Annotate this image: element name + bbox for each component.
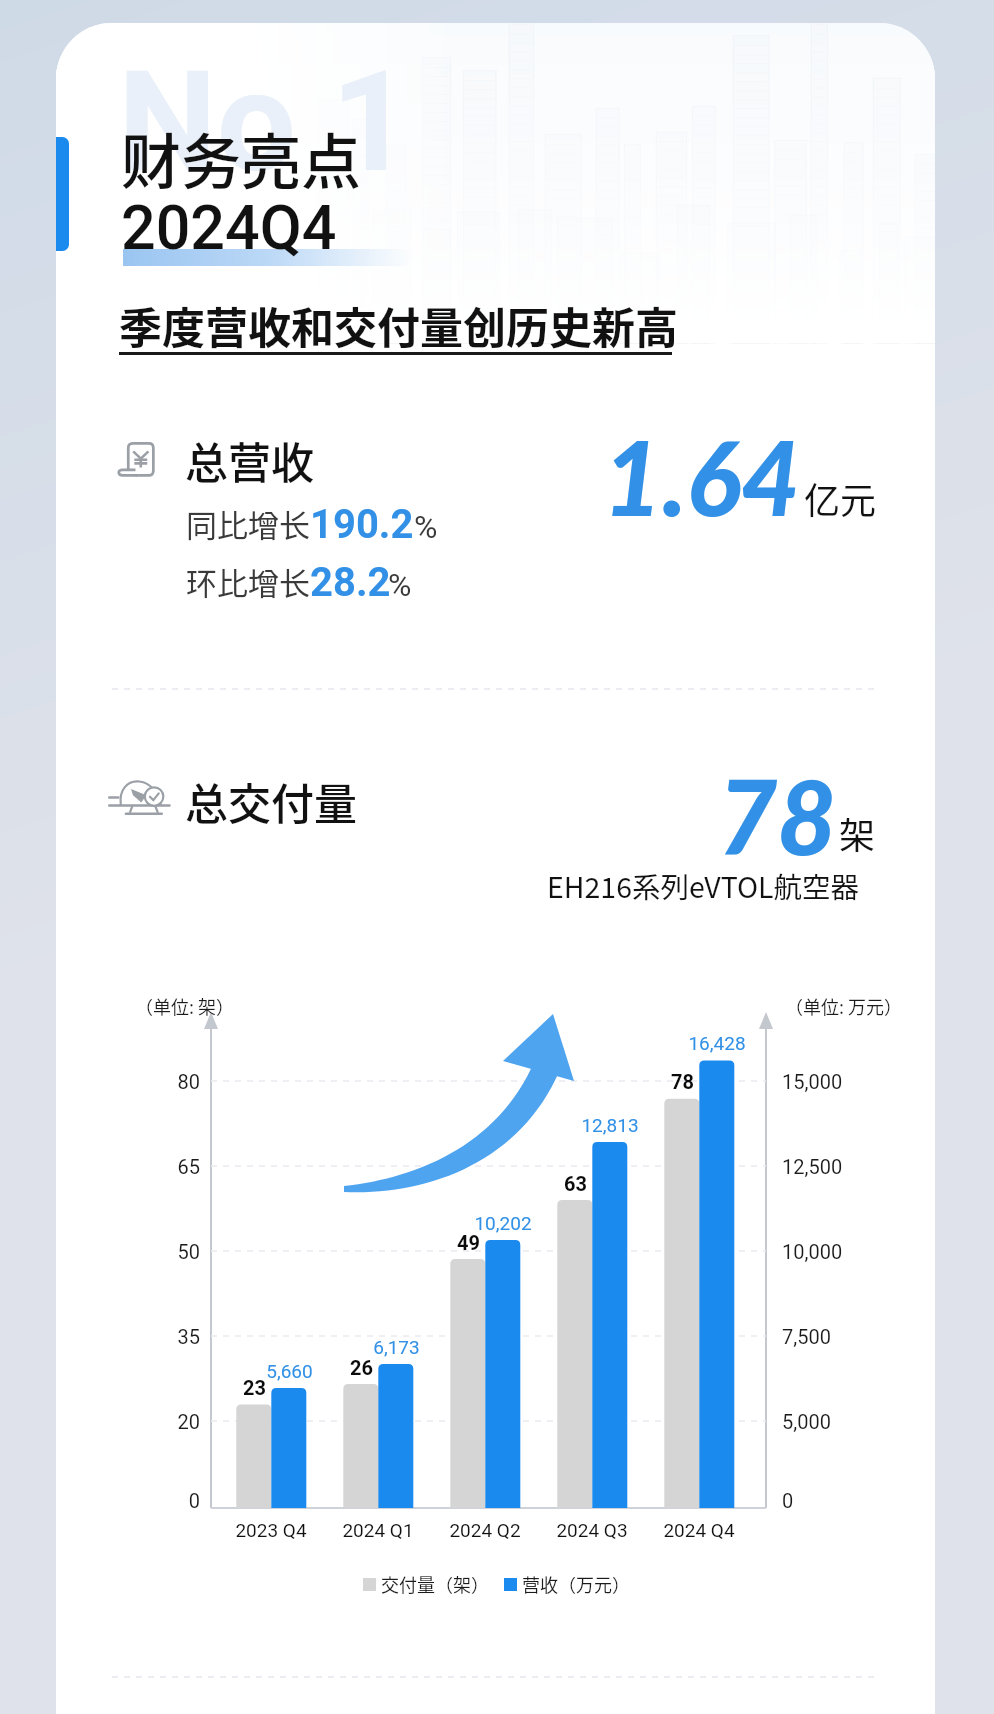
staticText: 65	[177, 1155, 200, 1178]
staticText: 2024 Q2	[449, 1519, 521, 1541]
staticText: 10,202	[474, 1212, 532, 1234]
staticText: （单位: 架）	[135, 993, 235, 1019]
staticText: 16,428	[688, 1032, 746, 1054]
staticText: 5,660	[266, 1360, 313, 1382]
staticText: 2024Q4	[121, 192, 337, 263]
staticText: （单位: 万元）	[785, 993, 903, 1019]
staticText: 同比增长	[186, 501, 310, 546]
staticText: 12,500	[782, 1155, 843, 1178]
staticText: 2024 Q3	[556, 1519, 628, 1541]
staticText: 财务亮点	[121, 114, 361, 201]
staticText: 7,500	[782, 1325, 831, 1348]
staticText: 26	[350, 1356, 373, 1379]
staticText: 2023 Q4	[235, 1519, 307, 1541]
staticText: 50	[177, 1240, 200, 1263]
staticText: 季度营收和交付量创历史新高	[119, 294, 678, 356]
staticText: 63	[564, 1172, 587, 1195]
staticText: 49	[457, 1231, 480, 1254]
staticText: 5,000	[782, 1410, 831, 1433]
staticText: 交付量（架）	[381, 1571, 489, 1597]
staticText: 6,173	[373, 1336, 420, 1358]
staticText: 15,000	[782, 1070, 843, 1093]
staticText: 35	[177, 1325, 200, 1348]
staticText: 0	[782, 1489, 794, 1512]
staticText: 营收（万元）	[522, 1571, 630, 1597]
staticText: 总交付量	[185, 770, 357, 832]
staticText: 78	[718, 754, 837, 876]
button[interactable]: 交付量（架）	[361, 1570, 489, 1598]
staticText: 2024 Q1	[342, 1519, 414, 1541]
staticText: 2024 Q4	[663, 1519, 735, 1541]
staticText: 190.2	[310, 501, 414, 548]
staticText: 总营收	[185, 429, 314, 491]
staticText: 78	[671, 1070, 694, 1093]
staticText: 10,000	[782, 1240, 843, 1263]
staticText: %	[388, 566, 412, 604]
staticText: 环比增长	[186, 559, 310, 604]
button[interactable]: 营收（万元）	[502, 1570, 630, 1598]
button[interactable]	[96, 416, 896, 606]
staticText: 20	[177, 1410, 200, 1433]
staticText: 12,813	[581, 1114, 639, 1136]
staticText: 亿元	[804, 472, 877, 524]
staticText: 80	[177, 1070, 200, 1093]
staticText: EH216系列eVTOL航空器	[547, 865, 860, 906]
staticText: 架	[839, 807, 876, 859]
staticText: No 1	[118, 40, 412, 204]
staticText: 28.2	[310, 559, 391, 606]
staticText: 0	[188, 1489, 200, 1512]
staticText: %	[414, 508, 438, 546]
staticText: 1.64	[603, 415, 801, 537]
staticText: 23	[243, 1376, 266, 1399]
button[interactable]	[96, 752, 896, 922]
